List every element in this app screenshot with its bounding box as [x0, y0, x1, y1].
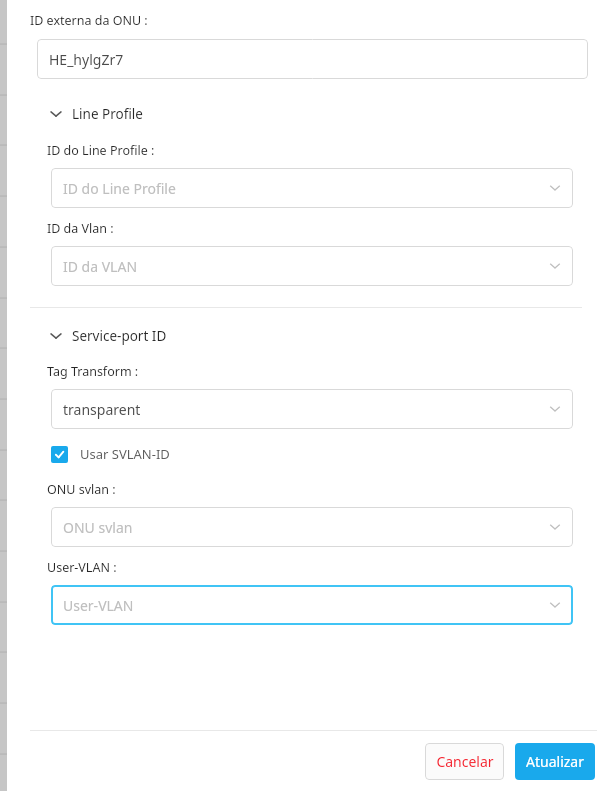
- staticText: Line Profile: [72, 105, 143, 123]
- button[interactable]: Usar SVLAN-ID: [51, 441, 170, 467]
- staticText: ID do Line Profile :: [47, 142, 155, 159]
- staticText: Service-port ID: [72, 327, 167, 345]
- button[interactable]: HE_hylgZr7: [37, 39, 588, 79]
- button[interactable]: Cancelar: [425, 743, 504, 780]
- staticText: transparent: [63, 400, 141, 419]
- staticText: Atualizar: [526, 752, 584, 771]
- button[interactable]: ID do Line Profile: [51, 168, 573, 208]
- button[interactable]: ID da VLAN: [51, 246, 573, 286]
- button[interactable]: Atualizar: [515, 743, 595, 780]
- staticText: ONU svlan :: [47, 481, 116, 498]
- staticText: Tag Transform :: [47, 363, 139, 380]
- button[interactable]: Line Profile: [48, 100, 595, 128]
- staticText: HE_hylgZr7: [49, 50, 124, 69]
- staticText: Cancelar: [436, 752, 494, 771]
- staticText: ONU svlan: [63, 518, 133, 537]
- button[interactable]: transparent: [51, 389, 573, 429]
- staticText: ID da Vlan :: [47, 220, 114, 237]
- staticText: ID da VLAN: [63, 257, 138, 276]
- staticText: User-VLAN: [63, 596, 134, 615]
- staticText: ID externa da ONU :: [30, 12, 148, 29]
- button[interactable]: Service-port ID: [48, 322, 595, 350]
- staticText: Usar SVLAN-ID: [80, 445, 170, 463]
- staticText: User-VLAN :: [47, 559, 117, 576]
- button[interactable]: User-VLAN: [51, 585, 573, 625]
- staticText: ID do Line Profile: [63, 179, 176, 198]
- button[interactable]: ONU svlan: [51, 507, 573, 547]
